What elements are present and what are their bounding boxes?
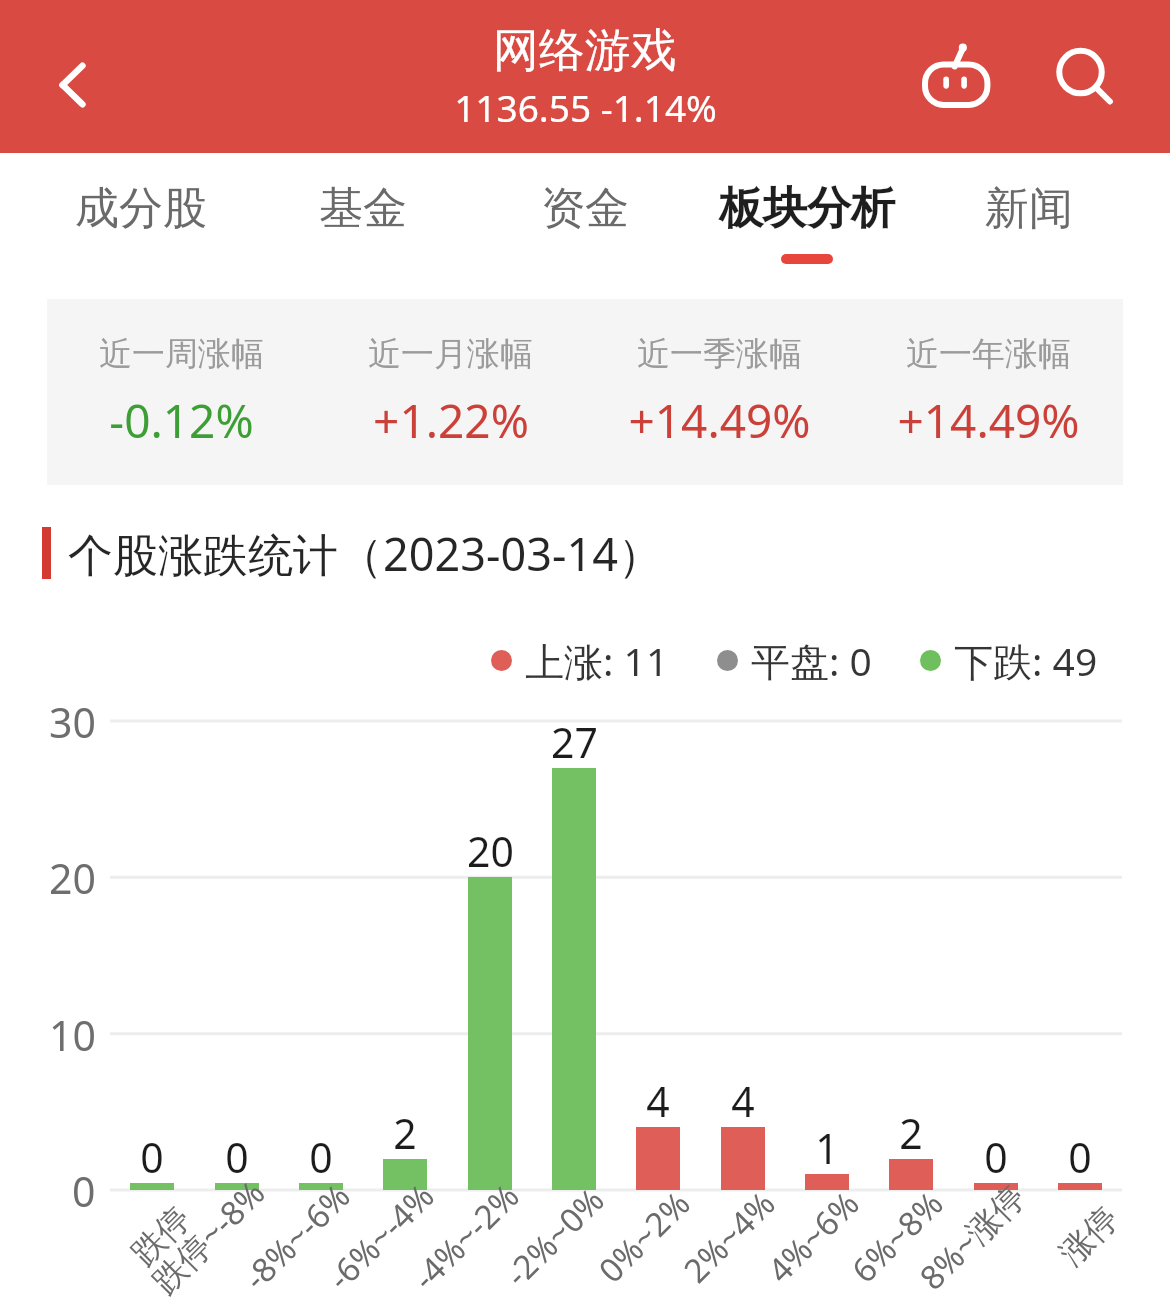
button[interactable] — [383, 1159, 427, 1190]
staticText: 成分股 — [75, 181, 207, 236]
staticText: 8%~涨停 — [909, 1174, 1035, 1299]
staticText: 个股涨跌统计（2023-03-14） — [68, 523, 663, 584]
staticText: 20 — [49, 850, 96, 906]
button[interactable]: AI assistant — [905, 28, 1009, 132]
button[interactable] — [974, 1183, 1018, 1190]
staticText: 近一季涨幅 — [637, 333, 802, 375]
staticText: 2 — [899, 1105, 923, 1161]
button[interactable]: 资金 — [474, 153, 696, 299]
staticText: 近一月涨幅 — [368, 333, 533, 375]
staticText: 4%~6% — [757, 1181, 868, 1292]
staticText: 0 — [72, 1163, 96, 1219]
button[interactable]: Back — [20, 30, 130, 140]
staticText: 近一周涨幅 — [99, 333, 264, 375]
staticText: 网络游戏 — [493, 22, 677, 80]
staticText: 下跌: 49 — [954, 634, 1098, 687]
staticText: 6%~8% — [841, 1181, 952, 1292]
staticText: 跌停 — [123, 1198, 199, 1274]
staticText: 4 — [731, 1073, 755, 1129]
button[interactable]: 近一月涨幅 — [316, 299, 585, 485]
button[interactable]: 板块分析 — [696, 153, 918, 299]
staticText: 1136.55 -1.14% — [454, 82, 717, 132]
staticText: 上涨: 11 — [525, 634, 669, 687]
staticText: 资金 — [541, 181, 629, 236]
staticText: -0.12% — [109, 389, 254, 452]
button[interactable] — [299, 1183, 343, 1190]
staticText: 基金 — [319, 181, 407, 236]
staticText: +1.22% — [373, 389, 529, 452]
staticText: 2 — [393, 1105, 417, 1161]
staticText: 0 — [140, 1129, 164, 1185]
staticText: 涨停 — [1051, 1198, 1127, 1274]
staticText: 跌停~-8% — [142, 1170, 274, 1303]
staticText: 30 — [49, 694, 96, 750]
button[interactable]: 新闻 — [918, 153, 1140, 299]
button[interactable]: 基金 — [252, 153, 474, 299]
staticText: 0%~2% — [588, 1181, 699, 1292]
staticText: 平盘: 0 — [751, 634, 872, 687]
staticText: -6%~-4% — [318, 1174, 443, 1299]
staticText: 27 — [551, 714, 598, 770]
staticText: +14.49% — [628, 389, 811, 452]
button[interactable]: 近一周涨幅 — [47, 299, 316, 485]
staticText: 20 — [467, 823, 514, 879]
staticText: 0 — [1068, 1129, 1092, 1185]
staticText: 板块分析 — [719, 181, 895, 236]
button[interactable]: 近一年涨幅 — [854, 299, 1123, 485]
button[interactable]: Search — [1035, 28, 1139, 132]
staticText: 近一年涨幅 — [906, 333, 1071, 375]
staticText: 0 — [984, 1129, 1008, 1185]
staticText: 0 — [309, 1129, 333, 1185]
staticText: 2%~4% — [673, 1181, 784, 1292]
staticText: +14.49% — [897, 389, 1080, 452]
staticText: -8%~-6% — [234, 1174, 359, 1299]
staticText: 1 — [815, 1120, 839, 1176]
staticText: 0 — [225, 1129, 249, 1185]
staticText: -4%~-2% — [403, 1174, 528, 1299]
button[interactable]: 成分股 — [30, 153, 252, 299]
staticText: 10 — [49, 1007, 96, 1063]
button[interactable] — [215, 1183, 259, 1190]
staticText: 新闻 — [985, 181, 1073, 236]
staticText: 4 — [646, 1073, 670, 1129]
button[interactable]: 近一季涨幅 — [585, 299, 854, 485]
staticText: -2%~0% — [495, 1177, 614, 1296]
